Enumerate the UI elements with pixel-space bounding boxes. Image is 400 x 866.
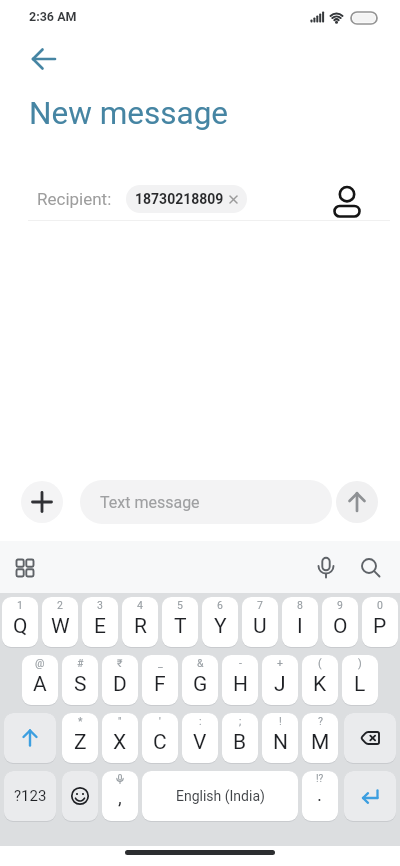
button[interactable]: [21, 481, 63, 523]
button[interactable]: ;: [222, 713, 258, 763]
staticText: :: [199, 715, 202, 727]
button[interactable]: ): [342, 655, 378, 705]
button[interactable]: Text message: [80, 480, 332, 524]
button[interactable]: 6: [202, 597, 238, 647]
staticText: X: [113, 730, 127, 755]
button[interactable]: #: [62, 655, 98, 705]
staticText: ): [358, 657, 362, 669]
staticText: Y: [214, 614, 227, 639]
staticText: ₹: [117, 657, 123, 669]
button[interactable]: [325, 178, 369, 222]
button[interactable]: 9: [322, 597, 358, 647]
staticText: ?: [318, 715, 323, 727]
staticText: A: [33, 672, 47, 697]
button[interactable]: :: [182, 713, 218, 763]
staticText: _: [158, 657, 163, 669]
button[interactable]: [344, 713, 396, 763]
staticText: S: [74, 672, 87, 697]
button[interactable]: [6, 549, 44, 587]
button[interactable]: 8: [282, 597, 318, 647]
button[interactable]: 2: [42, 597, 78, 647]
staticText: 4: [137, 599, 143, 611]
button[interactable]: (: [302, 655, 338, 705]
staticText: 18730218809: [135, 191, 224, 207]
button[interactable]: ': [142, 713, 178, 763]
button[interactable]: [4, 713, 56, 763]
staticText: ': [159, 715, 161, 727]
staticText: C: [153, 730, 167, 755]
button[interactable]: !?: [302, 771, 338, 821]
staticText: P: [373, 614, 387, 639]
staticText: !: [279, 715, 282, 727]
staticText: ": [118, 715, 122, 727]
staticText: W: [51, 614, 70, 639]
staticText: L: [354, 672, 366, 697]
button[interactable]: -: [222, 655, 258, 705]
button[interactable]: ₹: [102, 655, 138, 705]
staticText: (: [318, 657, 322, 669]
button[interactable]: [307, 549, 345, 587]
staticText: E: [94, 614, 106, 639]
staticText: New message: [29, 95, 229, 132]
button[interactable]: 1: [2, 597, 38, 647]
staticText: I: [297, 614, 303, 639]
button[interactable]: _: [142, 655, 178, 705]
staticText: .: [317, 783, 323, 805]
staticText: H: [233, 672, 248, 697]
staticText: @: [35, 657, 45, 669]
staticText: Q: [13, 614, 28, 639]
staticText: T: [174, 614, 187, 639]
staticText: 2:36 AM: [29, 9, 77, 24]
staticText: *: [78, 715, 83, 727]
staticText: 8: [297, 599, 303, 611]
button[interactable]: [62, 771, 98, 821]
staticText: 1: [17, 599, 23, 611]
button[interactable]: ,: [102, 771, 138, 821]
button[interactable]: 18730218809: [126, 185, 247, 213]
button[interactable]: 7: [242, 597, 278, 647]
button[interactable]: [344, 771, 396, 821]
staticText: G: [193, 672, 208, 697]
button[interactable]: &: [182, 655, 218, 705]
button[interactable]: +: [262, 655, 298, 705]
button[interactable]: 5: [162, 597, 198, 647]
staticText: 7: [257, 599, 263, 611]
staticText: 2: [57, 599, 63, 611]
staticText: J: [274, 672, 286, 697]
staticText: O: [333, 614, 348, 639]
staticText: M: [311, 730, 330, 755]
staticText: -: [239, 657, 242, 669]
button[interactable]: ?: [302, 713, 338, 763]
staticText: F: [154, 672, 166, 697]
button[interactable]: ?123: [4, 771, 56, 821]
button[interactable]: *: [62, 713, 98, 763]
staticText: U: [253, 614, 267, 639]
staticText: English (India): [176, 788, 265, 804]
staticText: 0: [377, 599, 383, 611]
staticText: Z: [74, 730, 87, 755]
staticText: !?: [316, 773, 324, 785]
button[interactable]: !: [262, 713, 298, 763]
button[interactable]: [20, 40, 64, 84]
staticText: 5: [177, 599, 183, 611]
button[interactable]: @: [22, 655, 58, 705]
button[interactable]: 3: [82, 597, 118, 647]
staticText: 3: [97, 599, 103, 611]
button[interactable]: ": [102, 713, 138, 763]
staticText: ,: [118, 786, 122, 808]
staticText: R: [134, 614, 147, 639]
button[interactable]: [352, 549, 390, 587]
staticText: &: [197, 657, 204, 669]
button[interactable]: 4: [122, 597, 158, 647]
staticText: Recipient:: [37, 189, 112, 209]
staticText: D: [113, 672, 127, 697]
staticText: 6: [217, 599, 223, 611]
staticText: ?123: [14, 787, 47, 805]
button[interactable]: English (India): [142, 771, 298, 821]
staticText: V: [193, 730, 207, 755]
staticText: N: [273, 730, 288, 755]
staticText: ;: [239, 715, 242, 727]
button[interactable]: 0: [362, 597, 398, 647]
button[interactable]: [336, 481, 378, 523]
staticText: +: [277, 657, 283, 669]
